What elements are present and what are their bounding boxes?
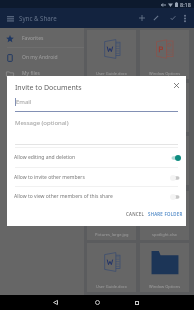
button[interactable]: Window Options [140,30,189,79]
staticText: Email [16,98,32,106]
staticText: Allow to view other members of this shar… [14,193,113,200]
staticText: On my Android [22,54,58,61]
staticText: Favorites [22,35,44,42]
button[interactable]: Recent apps [123,295,151,310]
staticText: Window Options [149,284,181,289]
button[interactable]: Open navigation drawer [3,11,18,25]
button[interactable] [140,136,189,185]
button[interactable]: User Guide.docx [87,30,136,79]
staticText: User Guide.docx [96,71,127,76]
button[interactable]: Allow to view other members of this shar… [7,187,186,206]
button[interactable]: Window Options [140,243,189,292]
button[interactable]: Allow to invite other members [7,168,186,187]
button[interactable] [87,136,136,185]
button[interactable]: Favorites [0,30,84,47]
button[interactable]: More options [179,11,191,25]
button[interactable]: Close [169,78,183,92]
button[interactable]: On my Android [0,49,84,66]
staticText: CANCEL [126,211,145,217]
button[interactable]: My files [0,65,84,82]
staticText: spotlight.xlsx [152,232,177,237]
staticText: Invite to Documents [15,83,82,93]
staticText: Sync & Share [19,14,57,22]
button[interactable]: Add [135,11,149,25]
button[interactable]: User Guide.docx [87,243,136,292]
button[interactable]: Allow editing and deletion [7,148,186,167]
button[interactable]: Home [83,295,111,310]
button[interactable]: spotlight.xlsx [140,191,189,240]
staticText: User Guide.docx [96,284,127,289]
staticText: Pictures_large.jpg [95,232,129,237]
button[interactable]: CANCEL [122,208,149,220]
staticText: 8:18 [180,1,191,8]
button[interactable] [140,83,189,132]
staticText: Message (optional) [15,119,69,127]
staticText: Window Options [149,71,181,76]
button[interactable]: Edit [149,11,163,25]
staticText: Allow editing and deletion [14,154,76,161]
staticText: SHARE FOLDER [148,211,183,217]
button[interactable] [87,83,136,132]
button[interactable]: SHARE FOLDER [144,208,187,220]
staticText: Allow to invite other members [14,174,85,181]
staticText: My files [22,70,40,77]
button[interactable]: Done [166,11,180,25]
button[interactable]: Back [41,295,69,310]
button[interactable]: Pictures_large.jpg [87,191,136,240]
